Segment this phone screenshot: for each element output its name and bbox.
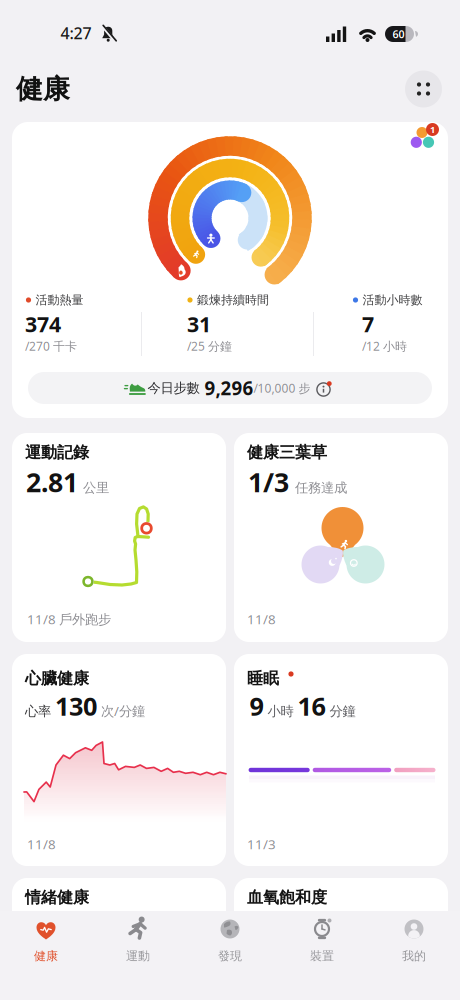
staticText: 發現 xyxy=(218,949,242,963)
button[interactable]: 裝置 xyxy=(276,917,368,969)
staticText: /270 千卡 xyxy=(25,338,77,354)
staticText: 60 xyxy=(392,27,404,41)
button[interactable]: 1 xyxy=(410,126,440,152)
staticText: 活動熱量 xyxy=(35,293,83,307)
staticText: 130 xyxy=(55,689,97,723)
button[interactable]: 情緒健康 xyxy=(12,878,226,928)
staticText: 鍛煉持續時間 xyxy=(197,293,269,307)
staticText: 16 xyxy=(297,689,325,723)
staticText: 374 xyxy=(25,310,61,338)
staticText: 情緒健康 xyxy=(25,888,89,907)
staticText: 11/8 戶外跑步 xyxy=(27,610,111,628)
staticText: 次/分鐘 xyxy=(101,702,145,720)
staticText: 分鐘 xyxy=(329,703,355,720)
staticText: /10,000 步 xyxy=(253,380,310,396)
staticText: 9,296 xyxy=(199,376,253,400)
staticText: 心臟健康 xyxy=(25,669,89,688)
staticText: 活動小時數 xyxy=(362,293,422,307)
button[interactable]: 血氧飽和度 xyxy=(234,878,448,928)
staticText: 裝置 xyxy=(310,949,334,963)
button[interactable]: 今日步數 xyxy=(28,372,432,404)
staticText: /12 小時 xyxy=(362,338,407,354)
staticText: 11/3 xyxy=(247,835,276,853)
staticText: 公里 xyxy=(83,480,109,496)
button[interactable] xyxy=(405,70,442,107)
staticText: 小時 xyxy=(267,703,293,720)
staticText: 心率 xyxy=(25,703,51,720)
staticText: 運動 xyxy=(126,949,150,963)
staticText: 11/8 xyxy=(27,835,56,853)
staticText: 運動記錄 xyxy=(25,443,89,462)
staticText: 今日步數 xyxy=(147,380,199,396)
staticText: 4:27 xyxy=(60,22,91,44)
button[interactable]: 心臟健康 xyxy=(12,654,226,866)
staticText: 健康三葉草 xyxy=(247,443,327,462)
staticText: 1/3 xyxy=(248,464,289,500)
button[interactable]: 運動 xyxy=(92,917,184,969)
staticText: 31 xyxy=(187,310,211,338)
staticText: 健康 xyxy=(34,949,58,963)
button[interactable]: 發現 xyxy=(184,917,276,969)
button[interactable]: 睡眠 xyxy=(234,654,448,866)
staticText: 2.81 xyxy=(26,464,78,500)
button[interactable]: 健康 xyxy=(0,917,92,969)
staticText: 9 xyxy=(249,689,263,723)
staticText: 1 xyxy=(430,123,435,136)
button[interactable]: 我的 xyxy=(368,917,460,969)
staticText: 我的 xyxy=(402,949,426,963)
staticText: 健康 xyxy=(16,73,70,105)
staticText: 血氧飽和度 xyxy=(247,888,327,907)
button[interactable]: 運動記錄 xyxy=(12,433,226,642)
staticText: 7 xyxy=(362,310,374,338)
button[interactable] xyxy=(12,122,448,418)
staticText: /25 分鐘 xyxy=(187,338,232,354)
button[interactable]: 健康三葉草 xyxy=(234,433,448,642)
staticText: 任務達成 xyxy=(295,480,347,496)
staticText: 睡眠 xyxy=(247,669,279,688)
staticText: 11/8 xyxy=(247,610,276,628)
